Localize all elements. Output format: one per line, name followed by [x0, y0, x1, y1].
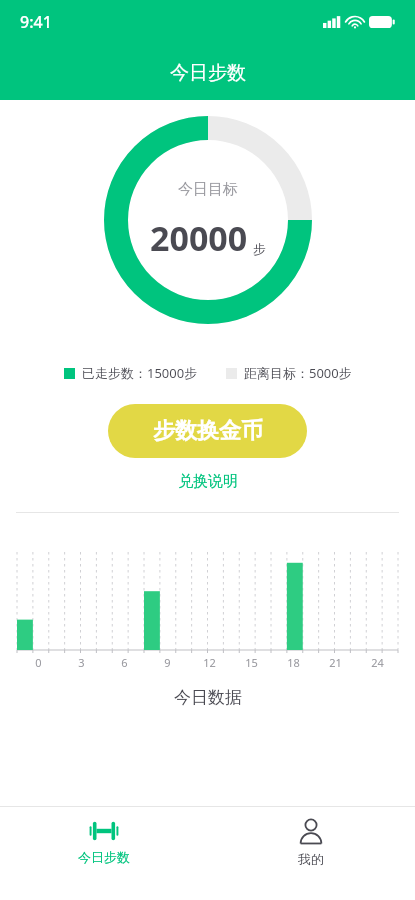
staticText: 15	[245, 655, 258, 670]
staticText: 0	[35, 655, 42, 670]
staticText: 24	[371, 655, 384, 670]
button[interactable]: 步数换金币	[108, 404, 307, 458]
button[interactable]: 兑换说明	[174, 468, 242, 495]
staticText: 9	[164, 655, 171, 670]
staticText: 18	[287, 655, 300, 670]
other: 我的	[298, 818, 324, 844]
staticText: 步	[253, 241, 266, 257]
staticText: 20000	[150, 215, 248, 261]
staticText: 12	[203, 655, 216, 670]
staticText: 21	[329, 655, 342, 670]
staticText: 6	[121, 655, 128, 670]
staticText: 今日步数	[170, 61, 246, 85]
staticText: 步数换金币	[153, 417, 263, 445]
staticText: 9:41	[20, 11, 52, 33]
button[interactable]: 今日步数	[0, 807, 207, 900]
staticText: 今日数据	[174, 687, 242, 708]
staticText: 3	[78, 655, 85, 670]
staticText: 今日目标	[178, 180, 238, 199]
staticText: 我的	[298, 851, 324, 867]
staticText: 已走步数：15000步	[82, 364, 198, 382]
button[interactable]: 我的	[207, 807, 415, 900]
staticText: 距离目标：5000步	[244, 364, 352, 382]
staticText: 兑换说明	[178, 472, 238, 491]
staticText: 今日步数	[78, 849, 130, 865]
